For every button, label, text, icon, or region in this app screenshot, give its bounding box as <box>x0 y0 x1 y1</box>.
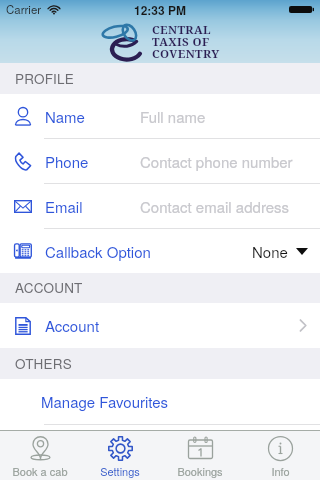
staticText: Full name <box>140 106 206 127</box>
staticText: OTHERS <box>15 354 72 373</box>
staticText: Book a cab <box>12 463 68 479</box>
staticText: Settings <box>100 463 140 479</box>
button[interactable]: Settings <box>80 431 160 480</box>
button[interactable]: Book a cab <box>0 431 80 480</box>
staticText: Account <box>45 315 100 336</box>
staticText: CENTRAL <box>152 22 211 38</box>
staticText: 12:33 PM <box>134 1 187 18</box>
button[interactable]: Bookings <box>160 431 240 480</box>
button[interactable]: Email <box>0 184 320 228</box>
button[interactable]: Info <box>240 431 320 480</box>
button[interactable]: Name <box>0 94 320 138</box>
staticText: PROFILE <box>15 69 74 88</box>
staticText: None <box>252 241 288 262</box>
staticText: Email <box>45 196 83 217</box>
staticText: COVENTRY <box>152 46 220 62</box>
staticText: Info <box>271 463 290 479</box>
button[interactable]: Account <box>0 303 320 348</box>
button[interactable]: Manage Favourites <box>0 379 320 424</box>
staticText: Carrier <box>6 1 42 17</box>
staticText: Contact phone number <box>140 151 293 172</box>
staticText: Phone <box>45 151 89 172</box>
staticText: Name <box>45 106 85 127</box>
staticText: Manage Favourites <box>41 391 169 412</box>
button[interactable]: Callback Option <box>0 229 320 273</box>
staticText: ACCOUNT <box>15 278 83 297</box>
staticText: Bookings <box>177 463 223 479</box>
staticText: TAXIS OF <box>152 34 210 50</box>
button[interactable]: Phone <box>0 139 320 183</box>
staticText: Callback Option <box>45 241 151 262</box>
staticText: Contact email address <box>140 196 290 217</box>
